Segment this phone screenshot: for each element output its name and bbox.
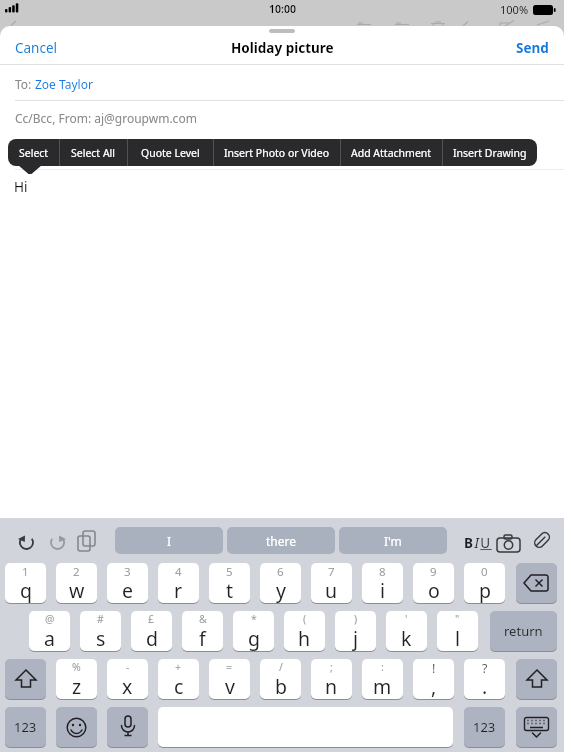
button[interactable]: ) [335,611,376,651]
staticText: Insert Drawing [453,146,527,160]
button[interactable] [107,707,148,747]
staticText: @ [45,612,55,626]
staticText: c [174,673,184,699]
button[interactable]: - [107,659,148,699]
button[interactable]: £ [131,611,172,651]
button[interactable]: ; [311,659,352,699]
button[interactable] [516,707,557,747]
staticText: 6 [277,564,284,580]
staticText: r [174,577,183,603]
staticText: : [381,660,384,674]
staticText: v [225,673,235,699]
staticText: k [401,625,412,651]
button[interactable]: ! [413,659,454,699]
button[interactable]: Select All [60,139,127,166]
button[interactable]: there [227,527,335,554]
button[interactable]: + [158,659,199,699]
staticText: * [251,612,257,626]
button[interactable]: 4 [158,563,199,603]
staticText: 7 [328,564,335,580]
staticText: there [266,533,297,549]
staticText: Holiday picture [231,39,334,57]
button[interactable]: 0 [464,563,505,603]
staticText: Cancel [15,39,58,57]
staticText: u [325,577,338,603]
button[interactable]: & [182,611,223,651]
staticText: 0 [481,564,488,580]
button[interactable]: 9 [413,563,454,603]
staticText: 123 [14,718,37,736]
button[interactable]: 8 [362,563,403,603]
staticText: BIU [464,534,492,552]
staticText: Select [19,146,49,160]
staticText: ! [432,660,436,677]
button[interactable]: : [362,659,403,699]
button[interactable]: 2 [56,563,97,603]
button[interactable]: 123 [464,707,505,747]
staticText: . [482,673,488,699]
button[interactable]: Send [449,39,549,57]
staticText: d [146,625,158,651]
staticText: 9 [430,564,437,580]
button[interactable]: ' [386,611,427,651]
button[interactable]: % [56,659,97,699]
button[interactable]: Quote Level [128,139,213,166]
button[interactable]: ( [284,611,325,651]
button[interactable]: 1 [5,563,46,603]
staticText: Insert Photo or Video [224,146,330,160]
staticText: 2 [73,564,80,580]
button[interactable] [56,707,97,747]
button[interactable] [516,563,557,603]
button[interactable]: Insert Photo or Video [214,139,340,166]
staticText: return [504,622,543,640]
staticText: I [167,533,172,549]
staticText: % [72,660,81,674]
staticText: / [279,660,283,674]
button[interactable]: To: [15,76,93,92]
button[interactable]: Add Attachment [341,139,442,166]
button[interactable]: ? [464,659,505,699]
staticText: p [479,577,491,603]
button[interactable]: I'm [339,527,447,554]
button[interactable]: 3 [107,563,148,603]
button[interactable]: " [437,611,478,651]
button[interactable]: = [209,659,250,699]
staticText: , [431,673,437,699]
button[interactable]: @ [29,611,70,651]
staticText: g [248,625,260,651]
staticText: & [199,612,207,626]
button[interactable]: 6 [260,563,301,603]
staticText: = [226,660,233,674]
button[interactable]: 5 [209,563,250,603]
staticText: Add Attachment [351,146,432,160]
staticText: j [353,625,359,651]
button[interactable]: Select [8,139,59,166]
button[interactable]: Cc/Bcc, From: aj@groupwm.com [15,110,197,126]
staticText: f [199,625,206,651]
button[interactable]: * [233,611,274,651]
button[interactable]: BIU [464,534,492,552]
staticText: s [96,625,106,651]
button[interactable]: Insert Drawing [443,139,537,166]
staticText: ' [405,612,408,626]
button[interactable]: return [490,611,557,651]
button[interactable] [516,659,557,699]
staticText: w [69,577,85,603]
staticText: ( [303,612,307,626]
button[interactable] [5,659,46,699]
staticText: Select All [71,146,116,160]
staticText: l [455,625,461,651]
button[interactable]: 7 [311,563,352,603]
button[interactable]: Cancel [15,39,58,57]
button[interactable]: 123 [5,707,46,747]
button[interactable]: / [260,659,301,699]
button[interactable]: # [80,611,121,651]
staticText: # [97,612,104,626]
staticText: h [298,625,311,651]
staticText: " [455,612,460,626]
button[interactable]: I [115,527,223,554]
staticText: 4 [175,564,182,580]
staticText: 10:00 [269,2,296,16]
staticText: + [175,660,182,674]
